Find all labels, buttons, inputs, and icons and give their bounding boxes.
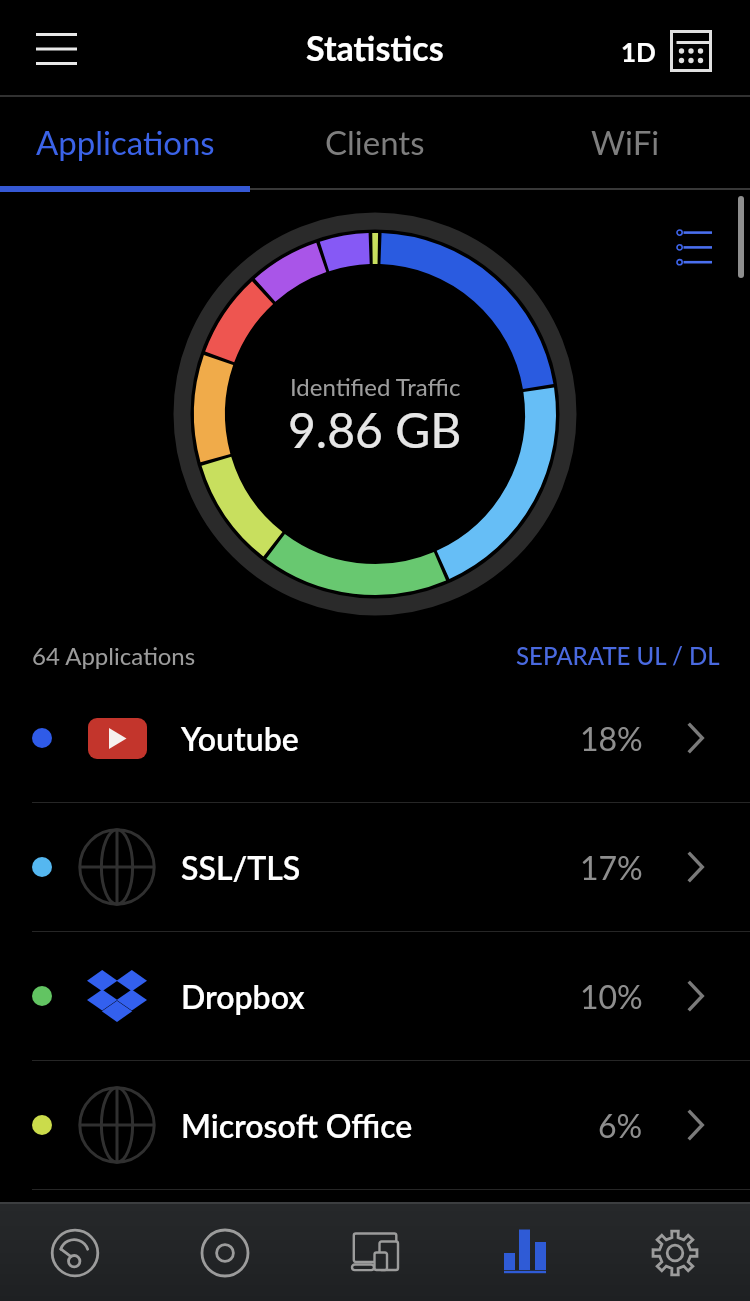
staticText: SEPARATE UL / DL xyxy=(516,641,720,670)
button[interactable]: Dropbox xyxy=(0,932,750,1060)
button[interactable]: Menu xyxy=(18,11,94,87)
staticText: Applications xyxy=(36,122,215,162)
staticText: 9.86 GB xyxy=(288,401,462,459)
staticText: 10% xyxy=(580,977,643,1015)
button[interactable]: Statistics xyxy=(450,1204,600,1301)
staticText: Identified Traffic xyxy=(290,372,461,401)
button[interactable]: SSL/TLS xyxy=(0,803,750,931)
button[interactable]: Microsoft Office xyxy=(0,1061,750,1189)
button[interactable]: Devices xyxy=(300,1204,450,1301)
staticText: Clients xyxy=(325,122,425,162)
button[interactable]: Settings xyxy=(600,1204,750,1301)
staticText: 17% xyxy=(580,848,643,886)
staticText: SSL/TLS xyxy=(181,848,301,886)
staticText: 1D xyxy=(621,36,656,67)
button[interactable]: List view xyxy=(668,220,722,274)
staticText: 6% xyxy=(598,1106,643,1144)
button[interactable]: Youtube xyxy=(0,674,750,802)
button[interactable]: SEPARATE UL / DL xyxy=(516,641,720,670)
staticText: 18% xyxy=(580,719,643,757)
button[interactable]: Monitor xyxy=(150,1204,300,1301)
button[interactable]: 1D xyxy=(604,26,656,77)
button[interactable]: Clients xyxy=(250,97,500,186)
button[interactable]: Speed test xyxy=(0,1204,150,1301)
staticText: 64 Applications xyxy=(32,641,196,670)
button[interactable]: WiFi xyxy=(500,97,750,186)
staticText: Microsoft Office xyxy=(181,1106,413,1144)
staticText: WiFi xyxy=(591,122,660,162)
staticText: Youtube xyxy=(181,719,299,757)
staticText: Statistics xyxy=(306,27,444,68)
button[interactable]: Applications xyxy=(0,97,250,186)
staticText: Dropbox xyxy=(181,977,305,1015)
button[interactable]: Calendar xyxy=(663,23,719,79)
